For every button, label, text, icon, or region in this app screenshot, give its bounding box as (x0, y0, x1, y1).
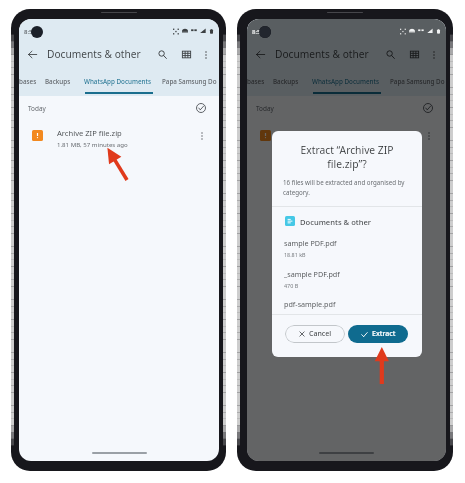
staticText: bases (247, 77, 265, 86)
button[interactable]: WhatsApp Documents (308, 71, 384, 92)
button[interactable]: Select all (194, 101, 208, 115)
button[interactable]: Backups (41, 71, 75, 92)
button[interactable]: Backups (269, 71, 303, 92)
staticText: Archive ZIP file.zip (57, 128, 122, 138)
staticText: 16 files will be extracted and organised… (283, 178, 419, 197)
staticText: Archive ZIP file.zip (285, 128, 350, 138)
staticText: 8:5 (252, 28, 261, 36)
staticText: Documents & other (47, 47, 141, 61)
button[interactable]: Search (382, 46, 399, 63)
staticText: Papa Samsung Do (162, 77, 217, 86)
button[interactable]: bases (247, 71, 269, 92)
button[interactable]: Archive ZIP file.zip (19, 120, 219, 152)
staticText: 470 B (284, 282, 299, 289)
button[interactable]: Papa Samsung Do (386, 71, 446, 92)
staticText: pdf-sample.pdf (284, 299, 336, 309)
staticText: 8:5 (252, 28, 261, 36)
button[interactable]: Extract (348, 325, 408, 343)
staticText: Backups (273, 77, 299, 86)
staticText: 1.81 MB, 57 minutes ago (57, 140, 128, 148)
staticText: sample PDF.pdf (284, 238, 337, 248)
button[interactable]: Grid view (406, 46, 423, 63)
button[interactable]: Grid view (178, 46, 195, 63)
staticText: Today (28, 104, 46, 113)
staticText: WhatsApp Documents (312, 77, 380, 86)
button[interactable]: File options (195, 129, 209, 143)
staticText: Extract “Archive ZIP file.zip”? (288, 143, 406, 171)
button[interactable]: bases (19, 71, 41, 92)
button[interactable]: Select all (421, 101, 435, 115)
staticText: Cancel (309, 329, 332, 339)
staticText: bases (19, 77, 37, 86)
button[interactable]: Papa Samsung Do (158, 71, 219, 92)
button[interactable]: Search (154, 46, 171, 63)
button[interactable]: Back (252, 46, 269, 63)
staticText: Documents & other (275, 47, 369, 61)
button[interactable]: Archive ZIP file.zip (247, 120, 446, 152)
staticText: Backups (45, 77, 71, 86)
staticText: 18.81 kB (284, 251, 306, 258)
staticText: WhatsApp Documents (84, 77, 152, 86)
staticText: Papa Samsung Do (390, 77, 445, 86)
staticText: Today (256, 104, 274, 113)
staticText: _sample PDF.pdf (284, 269, 340, 279)
button[interactable]: File options (422, 129, 436, 143)
button[interactable]: Back (24, 46, 41, 63)
button[interactable]: More options (198, 47, 213, 62)
button[interactable]: More options (426, 47, 441, 62)
button[interactable]: WhatsApp Documents (80, 71, 156, 92)
staticText: 8:5 (24, 28, 33, 36)
staticText: Documents & other (300, 217, 372, 227)
staticText: Extract (372, 329, 396, 339)
button[interactable]: Cancel (285, 325, 345, 343)
